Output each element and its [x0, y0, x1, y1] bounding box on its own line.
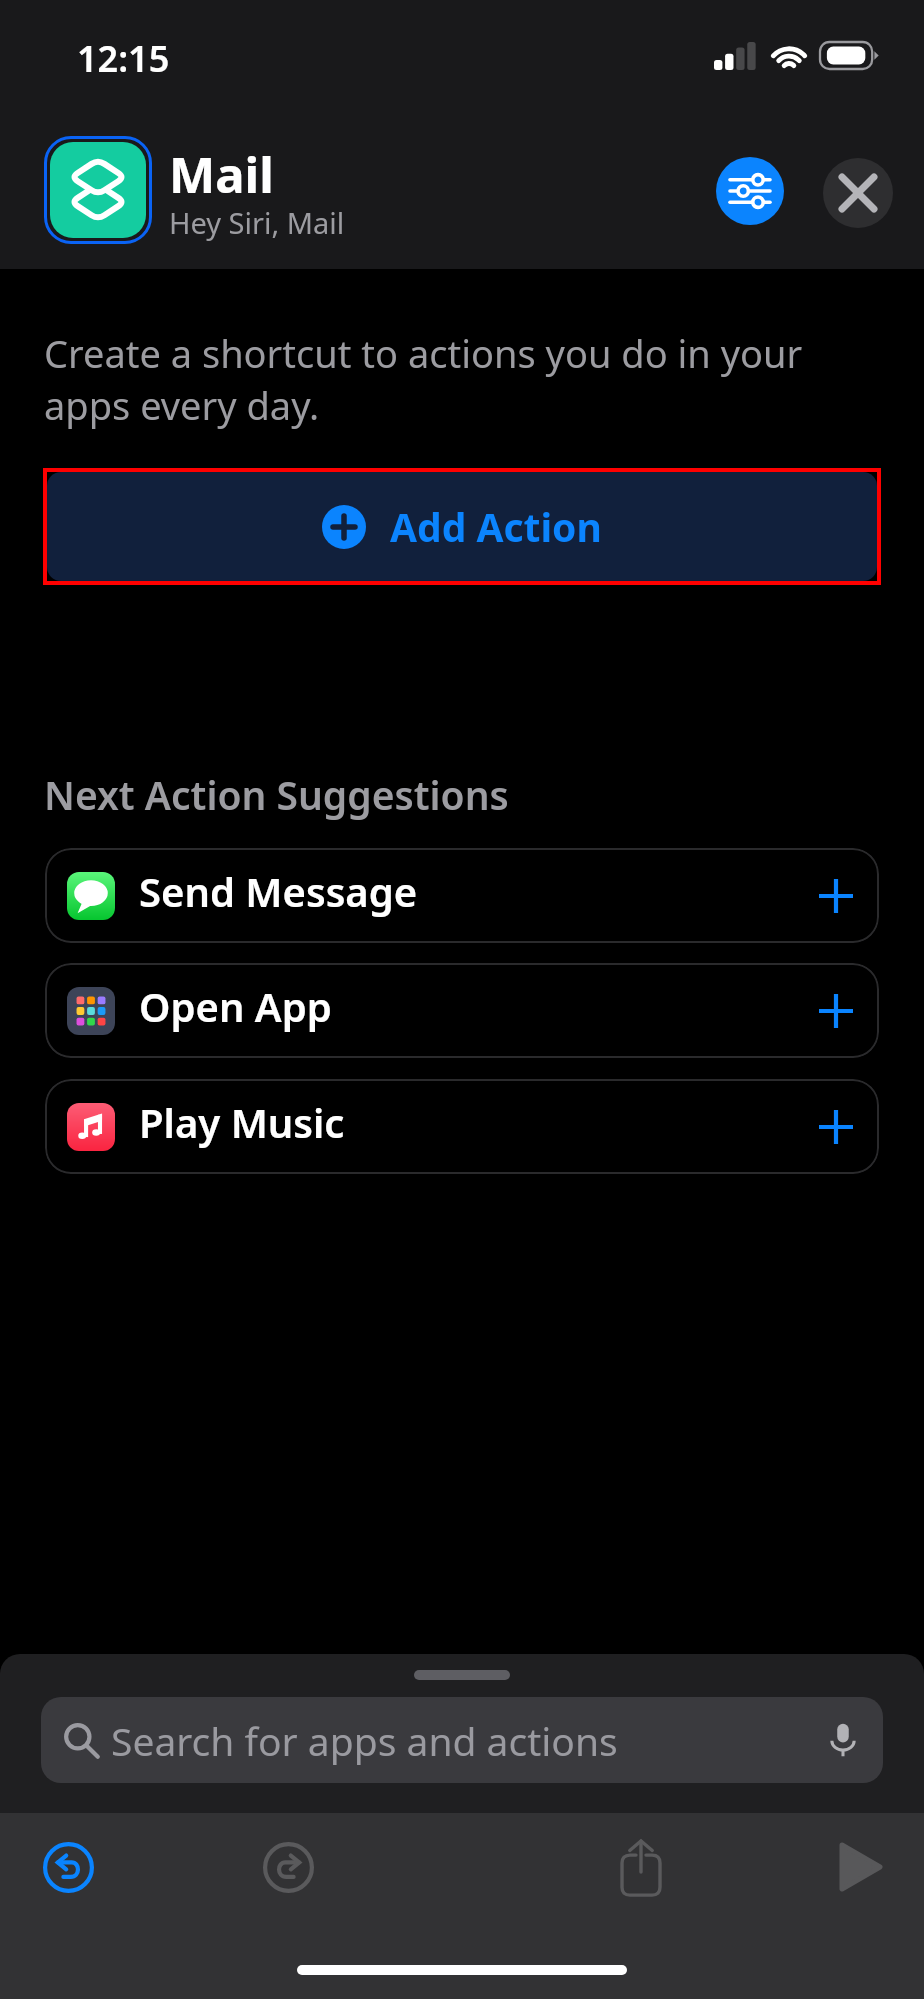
button[interactable]: Undo: [34, 1833, 102, 1901]
button[interactable]: Add Action: [43, 468, 881, 585]
staticText: Search for apps and actions: [111, 1714, 618, 1767]
button[interactable]: Close: [823, 158, 893, 228]
button[interactable]: Shortcut settings: [716, 157, 784, 225]
staticText: Open App: [139, 979, 332, 1033]
button[interactable]: Open App: [45, 963, 879, 1058]
button[interactable]: Redo: [254, 1833, 322, 1901]
button[interactable]: Play Music: [45, 1079, 879, 1174]
staticText: Play Music: [139, 1095, 345, 1149]
staticText: Create a shortcut to actions you do in y…: [44, 327, 803, 431]
staticText: Add Action: [390, 500, 602, 553]
button[interactable]: Play: [827, 1833, 895, 1901]
staticText: 12:15: [77, 34, 170, 83]
staticText: Hey Siri, Mail: [169, 203, 345, 242]
staticText: Next Action Suggestions: [44, 768, 509, 821]
button[interactable]: Send Message: [45, 848, 879, 943]
staticText: Send Message: [139, 864, 418, 918]
button[interactable]: Share: [607, 1833, 675, 1901]
staticText: Mail: [169, 141, 274, 208]
button[interactable]: Search for apps and actions: [41, 1697, 883, 1783]
